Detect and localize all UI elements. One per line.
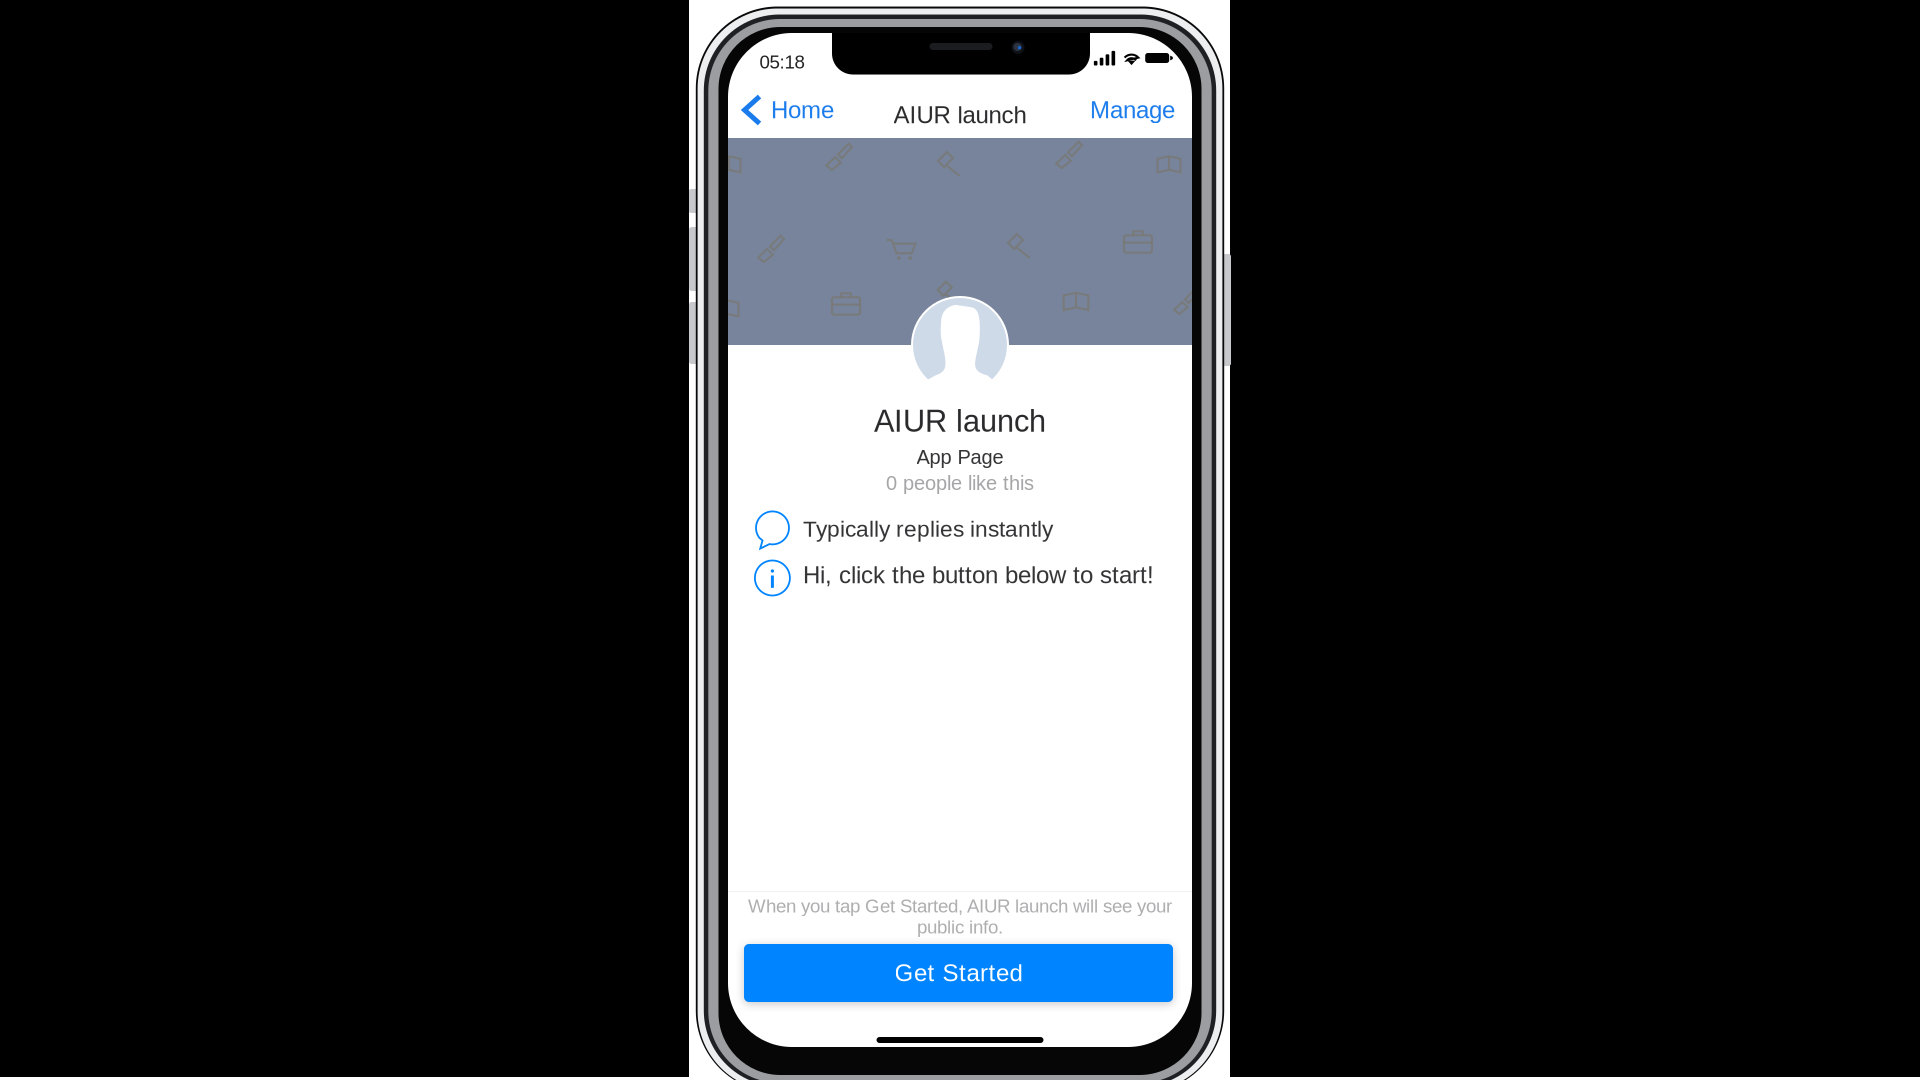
button[interactable]: Get Started <box>744 944 1173 1002</box>
button[interactable]: Manage <box>1078 85 1192 135</box>
staticText: When you tap Get Started, AIUR launch wi… <box>748 896 1172 916</box>
staticText: Manage <box>1090 97 1175 123</box>
staticText: AIUR launch <box>874 404 1046 438</box>
staticText: 05:18 <box>759 52 804 72</box>
staticText: Get Started <box>894 960 1022 986</box>
staticText: Hi, click the button below to start! <box>803 562 1154 588</box>
staticText: 0 people like this <box>886 472 1034 494</box>
staticText: AIUR launch <box>893 102 1026 128</box>
staticText: Typically replies instantly <box>803 516 1053 542</box>
staticText: Home <box>771 97 834 123</box>
staticText: public info. <box>917 917 1003 937</box>
button[interactable]: Home <box>728 85 846 135</box>
staticText: App Page <box>916 446 1003 468</box>
